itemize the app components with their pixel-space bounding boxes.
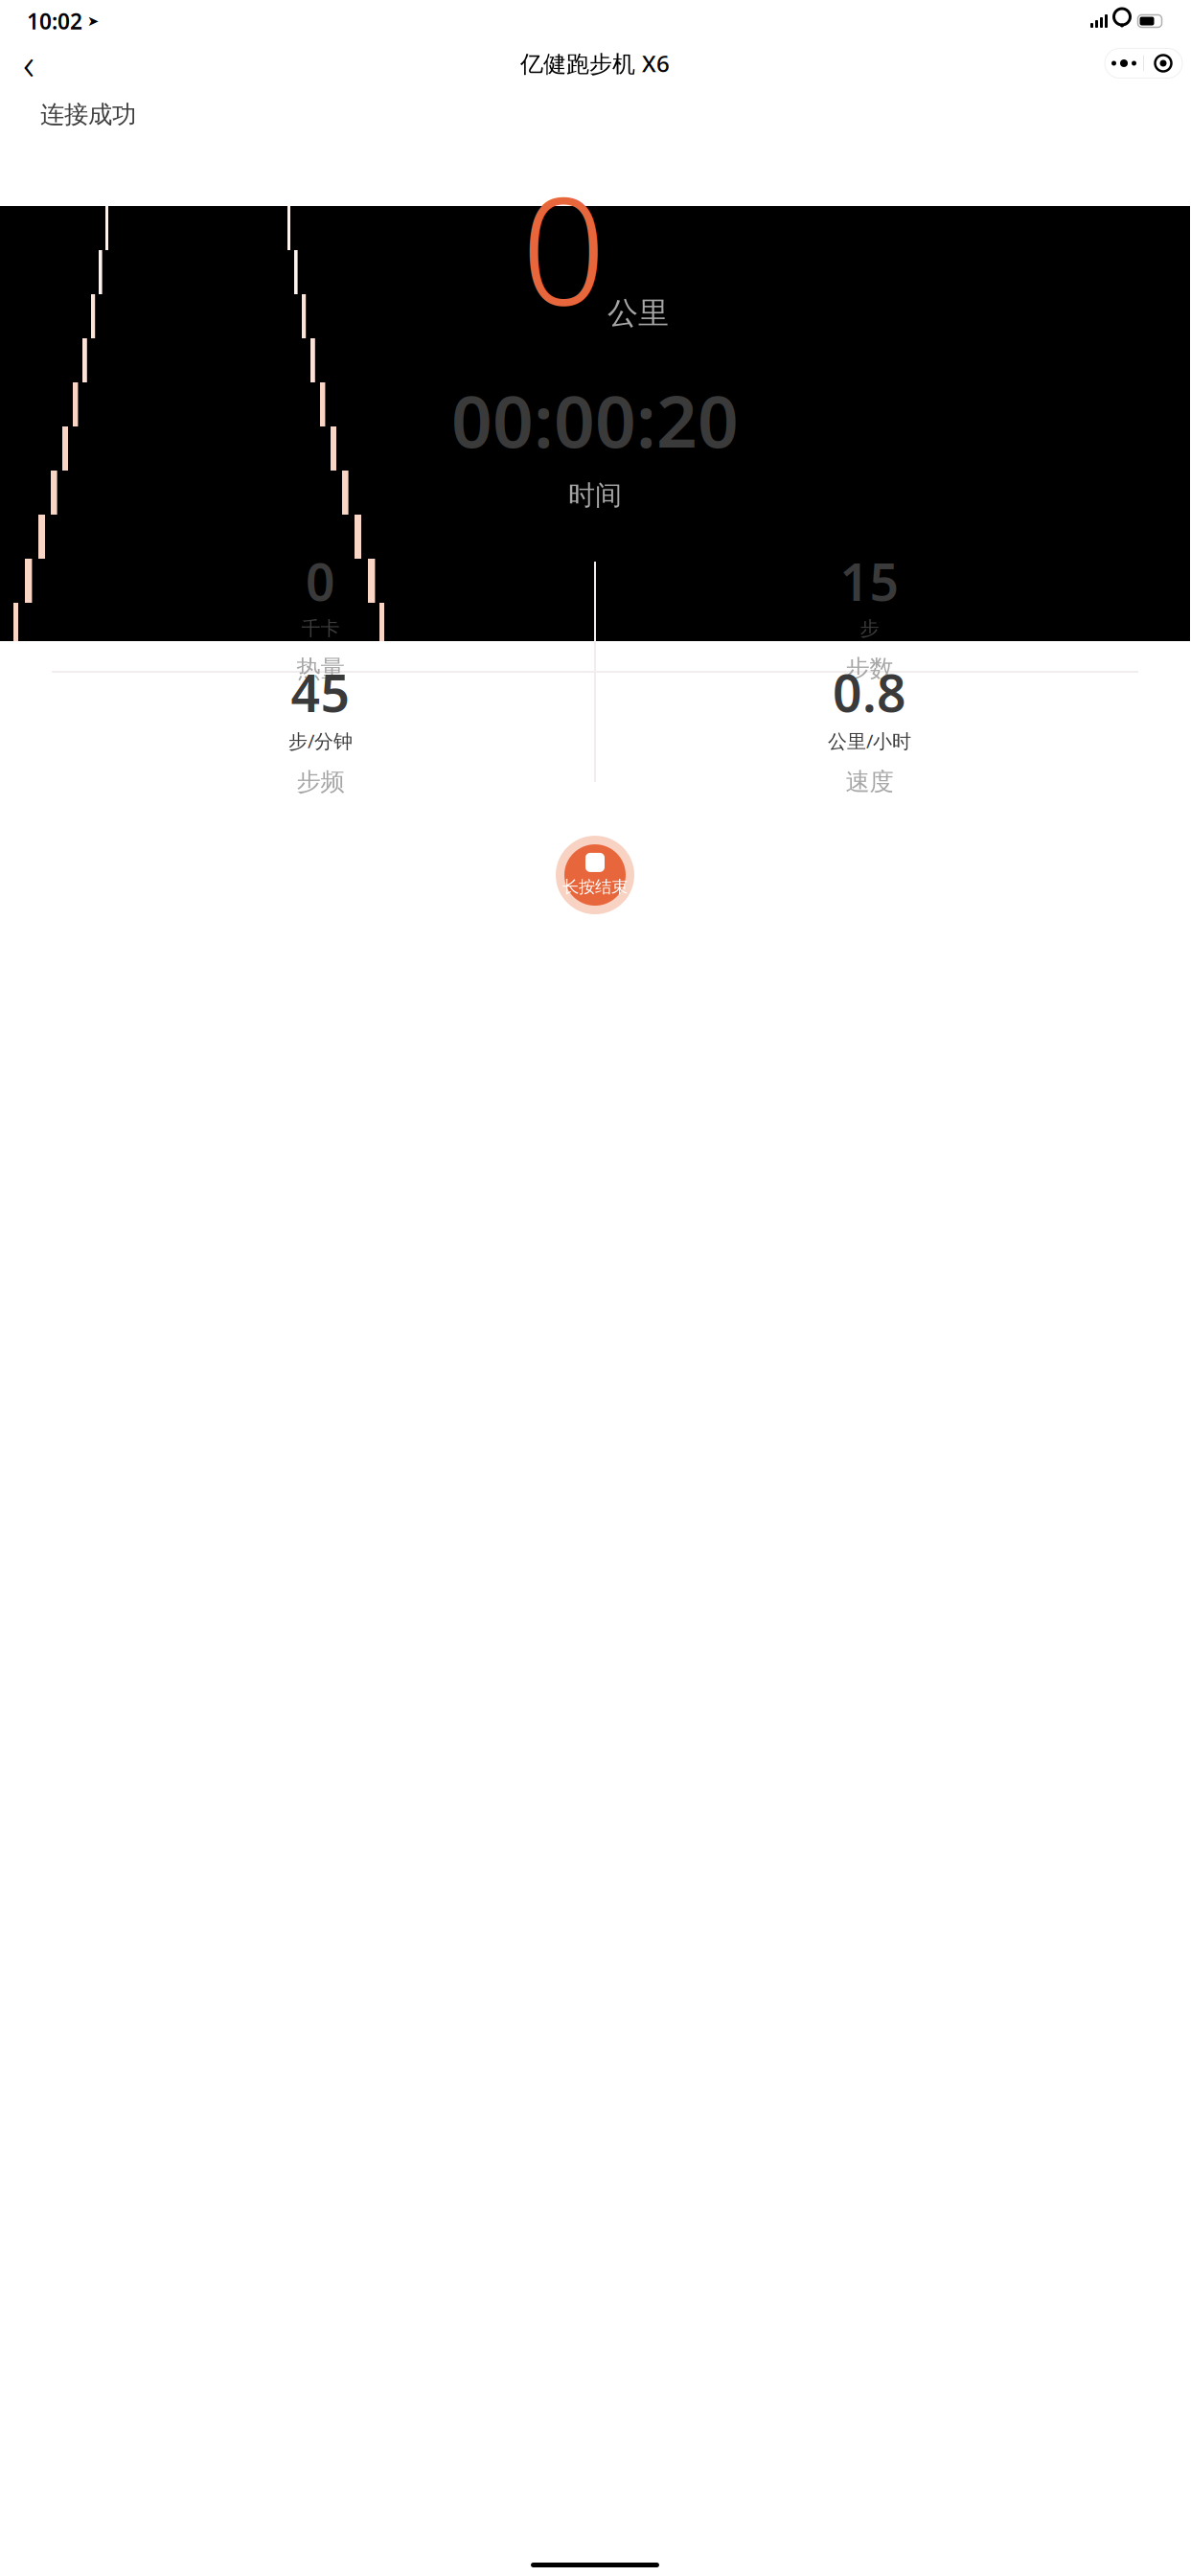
- staticText: 时间: [568, 479, 622, 512]
- staticText: 公里: [607, 294, 669, 332]
- staticText: 步: [860, 617, 879, 640]
- staticText: ‹: [23, 34, 34, 92]
- button[interactable]: Back: [8, 42, 50, 84]
- button[interactable]: 长按结束: [554, 834, 636, 916]
- staticText: 公里/小时: [828, 728, 911, 753]
- staticText: 0: [521, 149, 606, 345]
- staticText: 45: [291, 658, 350, 726]
- staticText: 热量: [297, 654, 344, 684]
- staticText: 亿健跑步机 X6: [520, 48, 670, 79]
- staticText: 10:02: [27, 7, 82, 35]
- button[interactable]: More: [1105, 48, 1143, 78]
- staticText: 0.8: [833, 658, 906, 726]
- button[interactable]: Close: [1144, 48, 1182, 78]
- staticText: 15: [840, 547, 899, 615]
- staticText: 00:00:20: [451, 372, 739, 467]
- staticText: 长按结束: [562, 877, 628, 897]
- staticText: 步/分钟: [288, 728, 353, 753]
- staticText: 速度: [846, 767, 893, 797]
- staticText: 步频: [297, 767, 344, 797]
- staticText: 千卡: [301, 617, 340, 640]
- staticText: ➤: [87, 13, 99, 29]
- staticText: 步数: [846, 654, 893, 684]
- staticText: 0: [306, 547, 335, 615]
- staticText: 连接成功: [40, 100, 136, 129]
